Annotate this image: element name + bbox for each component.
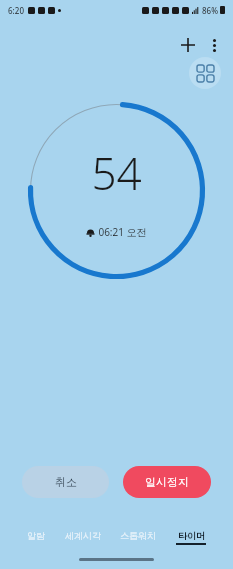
staticText: 스톱워치 — [120, 530, 156, 541]
staticText: 알람 — [27, 530, 45, 541]
staticText: 6:20 — [8, 5, 24, 16]
button[interactable]: Preset timers — [189, 57, 221, 89]
button[interactable]: 스톱워치 — [117, 528, 159, 547]
staticText: 취소 — [55, 475, 77, 489]
staticText: 86% — [202, 5, 218, 16]
button[interactable]: More options — [201, 32, 227, 58]
button[interactable]: Add timer — [175, 32, 201, 58]
staticText: 54 — [91, 143, 142, 203]
staticText: 06:21 오전 — [98, 225, 147, 239]
button[interactable]: 타이머 — [173, 528, 209, 547]
staticText: 세계시각 — [65, 530, 101, 541]
button[interactable]: 일시정지 — [123, 466, 211, 498]
button[interactable]: 알람 — [24, 528, 48, 547]
button[interactable]: 세계시각 — [62, 528, 104, 547]
staticText: 타이머 — [178, 530, 205, 541]
staticText: 일시정지 — [145, 475, 189, 489]
button[interactable]: 취소 — [22, 466, 109, 498]
